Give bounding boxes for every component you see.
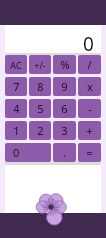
staticText: x [87,79,93,94]
staticText: / [87,57,92,72]
button[interactable]: - [78,99,101,118]
button[interactable]: . [53,143,76,162]
staticText: 7 [13,79,20,94]
staticText: 6 [61,101,68,116]
button[interactable]: x [78,77,101,96]
staticText: 5 [37,101,44,116]
staticText: - [88,101,92,116]
button[interactable]: 3 [53,121,76,140]
staticText: 9 [61,79,68,94]
staticText: 3 [61,123,68,138]
button[interactable]: 1 [5,121,27,140]
button[interactable]: 9 [53,77,76,96]
button[interactable]: +/- [29,55,51,74]
button[interactable]: 5 [29,99,51,118]
staticText: 4 [13,101,20,116]
staticText: % [60,57,70,72]
staticText: = [86,145,93,160]
staticText: 8 [37,79,44,94]
button[interactable]: 0 [5,143,51,162]
button[interactable]: 8 [29,77,51,96]
staticText: +/- [34,59,46,71]
button[interactable]: AC [5,55,27,74]
staticText: 0 [13,145,20,160]
staticText: 2 [37,123,44,138]
staticText: . [63,145,66,160]
staticText: 0 [83,31,94,57]
button[interactable]: = [78,143,101,162]
staticText: + [86,123,93,138]
button[interactable]: 7 [5,77,27,96]
button[interactable]: 6 [53,99,76,118]
staticText: AC [10,59,22,71]
button[interactable]: 4 [5,99,27,118]
button[interactable]: % [53,55,76,74]
button[interactable]: + [78,121,101,140]
button[interactable]: / [78,55,101,74]
staticText: 1 [13,123,20,138]
button[interactable]: 2 [29,121,51,140]
